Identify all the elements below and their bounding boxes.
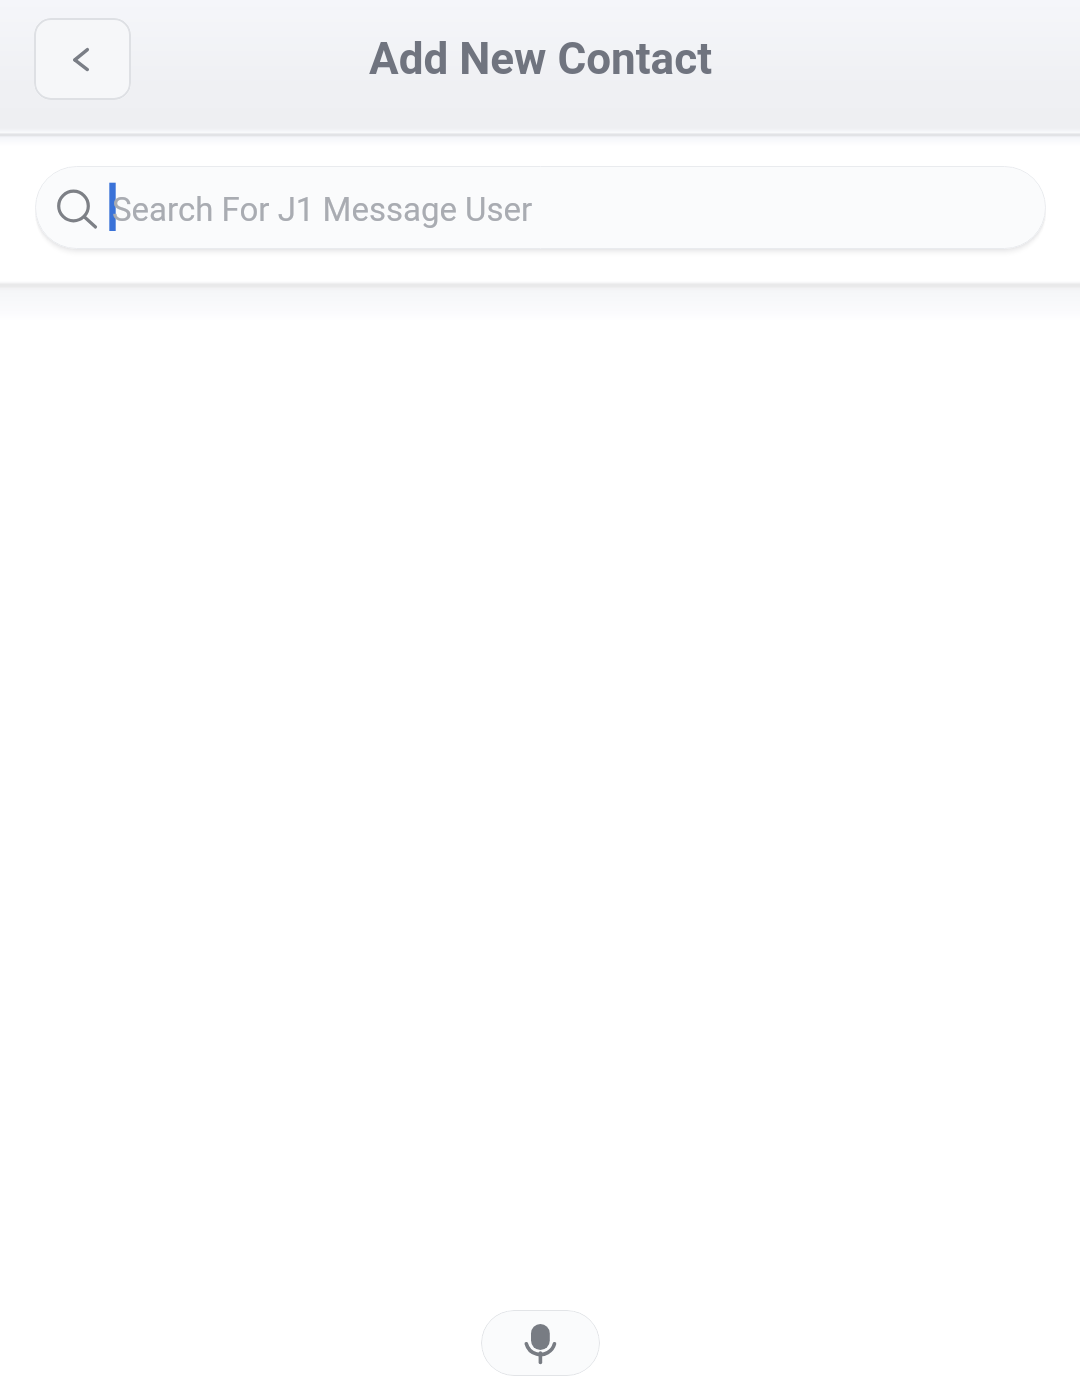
button[interactable]: Search For J1 Message User — [35, 166, 1046, 249]
staticText: Search For J1 Message User — [112, 190, 533, 229]
button[interactable]: Back — [34, 18, 131, 100]
button[interactable]: Voice input — [481, 1310, 600, 1376]
staticText: Add New Contact — [369, 33, 712, 85]
